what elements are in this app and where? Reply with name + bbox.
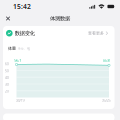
staticText: 数据变化 bbox=[15, 30, 35, 36]
button[interactable]: 数据变化 bbox=[6, 29, 42, 38]
staticText: kg bbox=[27, 47, 30, 50]
staticText: 15:42 bbox=[13, 2, 31, 11]
staticText: 30 bbox=[5, 81, 9, 87]
staticText: 04/19 bbox=[15, 97, 24, 103]
staticText: 50 bbox=[5, 68, 9, 73]
button[interactable]: Close bbox=[2, 13, 14, 24]
staticText: 40 bbox=[5, 75, 9, 80]
button[interactable]: 查看更多 bbox=[84, 29, 108, 37]
staticText: 55.8 bbox=[102, 57, 109, 63]
staticText: 体测数据 bbox=[50, 15, 70, 22]
staticText: 05/25 bbox=[101, 97, 110, 103]
staticText: 56.1 bbox=[14, 57, 21, 63]
staticText: 60 bbox=[5, 61, 9, 66]
staticText: 单位: bbox=[18, 47, 25, 50]
staticText: 查看更多 bbox=[88, 31, 104, 36]
staticText: 20 bbox=[5, 88, 9, 94]
staticText: 体重 bbox=[8, 46, 16, 51]
